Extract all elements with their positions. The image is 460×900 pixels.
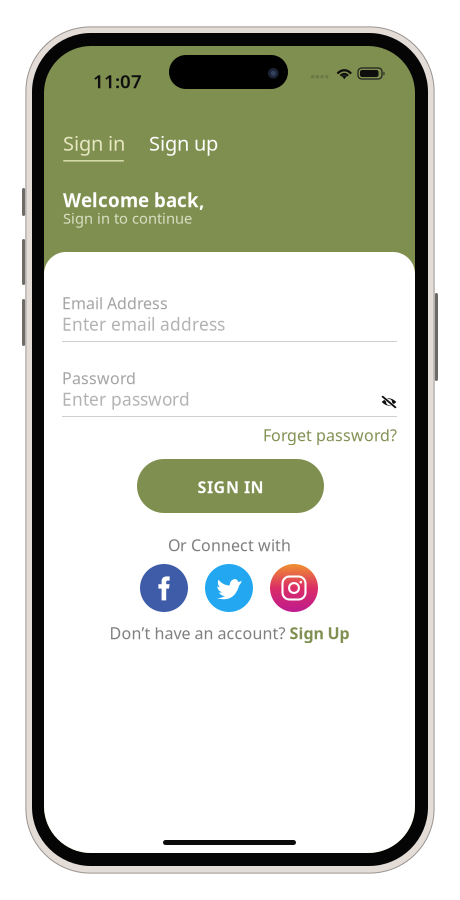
staticText: Or Connect with (168, 534, 291, 556)
staticText: Welcome back, (63, 188, 204, 212)
staticText: Sign Up (289, 622, 349, 644)
staticText: SIGN IN (197, 476, 263, 498)
button[interactable]: Sign up (149, 128, 221, 154)
staticText: Forget password? (263, 424, 397, 446)
staticText: Enter password (62, 387, 190, 410)
button[interactable]: Sign in (63, 128, 125, 162)
staticText: Sign up (149, 130, 218, 156)
staticText: Enter email address (62, 312, 225, 335)
button[interactable]: SIGN IN (137, 459, 324, 513)
button[interactable]: Sign Up (289, 622, 349, 644)
staticText: Sign in to continue (63, 208, 192, 228)
staticText: Password (62, 367, 136, 389)
staticText: Email Address (62, 292, 168, 314)
button[interactable]: Sign in with Instagram (270, 564, 318, 612)
button[interactable]: Forget password? (244, 423, 397, 447)
staticText: Don’t have an account? (109, 622, 289, 644)
staticText: Sign in (63, 130, 125, 156)
button[interactable]: Show password (374, 390, 398, 414)
button[interactable]: Sign in with Twitter (205, 564, 253, 612)
staticText: 11:07 (93, 69, 142, 93)
button[interactable]: Sign in with Facebook (140, 564, 188, 612)
